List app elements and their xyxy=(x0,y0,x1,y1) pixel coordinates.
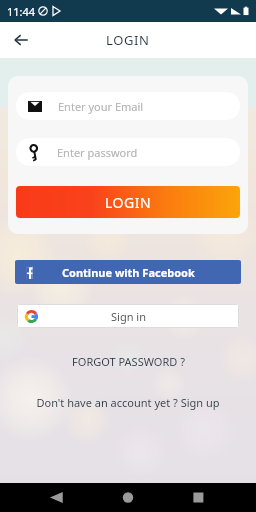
button[interactable]: Sign in xyxy=(17,304,239,328)
staticText: 11:44 xyxy=(7,4,36,19)
button[interactable]: Enter password xyxy=(16,138,240,166)
staticText: Sign in xyxy=(111,309,146,324)
button[interactable]: Back xyxy=(6,25,36,55)
staticText: LOGIN xyxy=(105,193,152,212)
staticText: Don't have an account yet ? Sign up xyxy=(36,395,220,410)
staticText: Enter your Email xyxy=(58,99,144,114)
button[interactable]: Don't have an account yet ? Sign up xyxy=(0,395,256,410)
button[interactable]: LOGIN xyxy=(16,186,240,218)
button[interactable]: Enter your Email xyxy=(16,92,240,120)
button[interactable]: FORGOT PASSWORD ? xyxy=(0,354,256,369)
staticText: FORGOT PASSWORD ? xyxy=(72,354,185,369)
staticText: Enter password xyxy=(57,145,138,160)
staticText: Continue with Facebook xyxy=(62,265,195,280)
staticText: LOGIN xyxy=(106,31,150,49)
button[interactable]: Continue with Facebook xyxy=(15,260,241,284)
